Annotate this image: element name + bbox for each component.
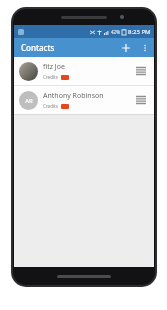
button[interactable]: Add contact xyxy=(116,38,135,57)
staticText: 42% xyxy=(111,29,120,35)
button[interactable]: AR xyxy=(14,86,154,114)
button[interactable]: Reorder contact xyxy=(133,86,149,114)
staticText: Credits xyxy=(43,103,58,109)
staticText: 8:25 PM xyxy=(128,28,151,36)
staticText: Anthony Robinson xyxy=(43,91,104,101)
button[interactable]: fitz Joe xyxy=(14,57,154,85)
staticText: fitz Joe xyxy=(43,62,65,72)
staticText: AR xyxy=(25,97,33,105)
button[interactable]: Reorder contact xyxy=(133,57,149,85)
button[interactable]: More options xyxy=(135,38,154,57)
staticText: Credits xyxy=(43,74,58,80)
staticText: Contacts xyxy=(21,42,55,53)
